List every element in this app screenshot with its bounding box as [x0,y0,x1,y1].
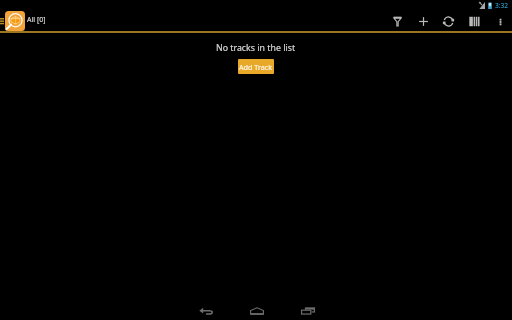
staticText: 3:32 [495,1,509,10]
button[interactable]: More options [487,11,512,33]
staticText: Add Track [239,62,273,72]
button[interactable]: Scan barcode [461,11,487,33]
button[interactable]: Back [196,301,215,320]
button[interactable]: Refresh [435,11,461,33]
button[interactable]: Add Track [238,59,274,74]
staticText: No tracks in the list [216,42,296,54]
button[interactable]: Add track [410,11,436,33]
button[interactable]: Recent apps [298,301,317,320]
button[interactable]: App icon [5,11,25,31]
staticText: All [0] [27,15,46,25]
button[interactable]: Filter [384,11,410,33]
button[interactable]: Home [247,301,266,320]
